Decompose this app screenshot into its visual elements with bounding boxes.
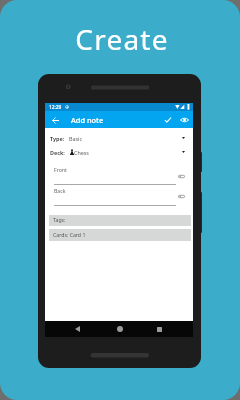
button[interactable]: Tags: xyxy=(49,215,191,226)
staticText: Type: xyxy=(50,135,65,142)
staticText: Add note xyxy=(71,115,104,125)
button[interactable]: Back xyxy=(69,321,85,337)
staticText: Chess xyxy=(74,149,89,156)
staticText: Back xyxy=(54,187,66,194)
staticText: Basic xyxy=(69,135,83,142)
button[interactable]: Preview xyxy=(177,113,191,127)
staticText: 12:29 xyxy=(49,104,62,111)
staticText: Front xyxy=(54,166,67,173)
button[interactable]: Home xyxy=(112,321,128,337)
button[interactable]: Type: xyxy=(45,131,193,145)
button[interactable]: Save xyxy=(161,113,175,127)
staticText: Create xyxy=(2,20,240,58)
staticText: Deck: xyxy=(50,149,65,156)
button[interactable]: Cards: Card 1 xyxy=(49,229,191,241)
button[interactable]: Recent apps xyxy=(151,321,167,337)
button[interactable]: Attach media xyxy=(175,172,188,181)
button[interactable]: Navigate up xyxy=(48,113,62,127)
staticText: Tags: xyxy=(53,216,66,223)
button[interactable]: Deck: xyxy=(45,145,193,159)
staticText: Cards: Card 1 xyxy=(53,231,86,238)
button[interactable]: Attach media xyxy=(175,192,188,201)
